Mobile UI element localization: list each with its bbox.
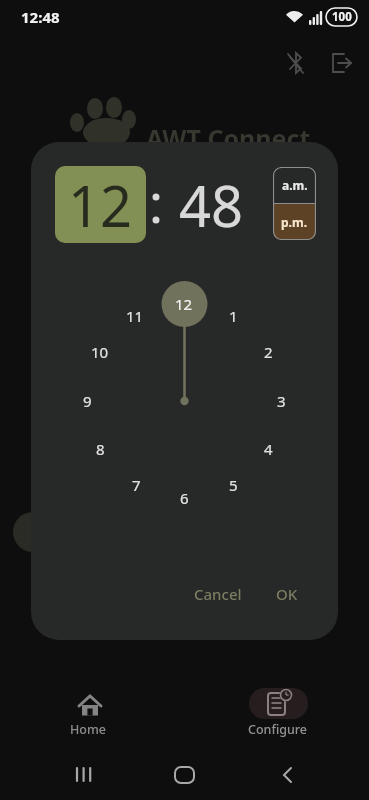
button[interactable]: p.m. [273,204,316,240]
staticText: Configure [248,721,308,738]
staticText: 8 [96,439,105,459]
button[interactable]: OK [31,142,71,170]
staticText: 6 [180,488,189,508]
staticText: 9 [83,391,92,411]
staticText: 10 [91,342,109,362]
staticText: AWT Connect [146,121,311,155]
button[interactable] [280,47,312,79]
staticText: Cancel [194,584,242,604]
button[interactable] [268,758,308,794]
button[interactable]: Configure [238,682,318,742]
staticText: 12 [175,294,193,314]
staticText: 7 [132,475,141,495]
staticText: 1 [229,306,238,326]
staticText: OK [276,584,298,604]
button[interactable]: 48 [31,142,121,219]
staticText: Home [70,721,107,738]
button[interactable]: a.m. [273,167,316,203]
staticText: 12:48 [21,7,60,27]
staticText: p.m. [281,214,308,230]
staticText: 4 [264,439,273,459]
button[interactable]: Cancel [31,142,95,170]
button[interactable] [164,758,204,794]
staticText: 12 [68,167,133,243]
button[interactable]: 12 [55,166,146,243]
button[interactable]: Home [48,682,128,742]
staticText: a.m. [282,177,308,193]
staticText: 5 [229,475,238,495]
button[interactable] [325,47,357,79]
staticText: 48 [179,167,244,243]
staticText: 100 [332,9,352,25]
staticText: 2 [264,342,273,362]
staticText: 3 [277,391,286,411]
staticText: 11 [126,306,144,326]
button[interactable] [65,758,105,794]
